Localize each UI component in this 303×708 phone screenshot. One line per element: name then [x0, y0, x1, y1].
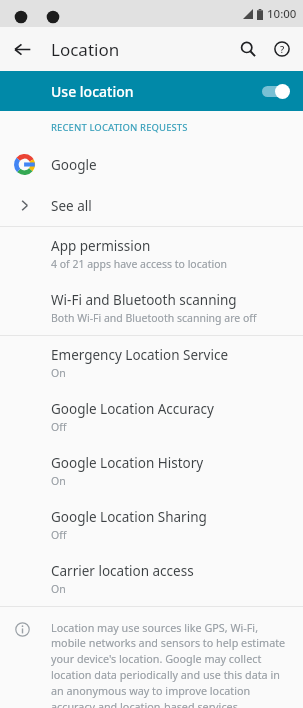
button[interactable]: App permission — [0, 227, 303, 281]
button[interactable]: See all — [0, 185, 303, 226]
staticText: 10:00 — [267, 6, 297, 22]
staticText: ? — [280, 43, 285, 56]
button[interactable]: Google Location Accuracy — [0, 390, 303, 444]
staticText: App permission — [51, 237, 151, 255]
staticText: Carrier location access — [51, 562, 194, 580]
staticText: Google Location History — [51, 454, 204, 472]
staticText: On — [51, 474, 66, 488]
button[interactable]: Emergency Location Service — [0, 336, 303, 390]
button[interactable]: Google — [0, 144, 303, 185]
staticText: Emergency Location Service — [51, 346, 229, 364]
button[interactable]: Carrier location access — [0, 552, 303, 606]
staticText: Location may use sources like GPS, Wi-Fi… — [51, 620, 290, 708]
staticText: Wi-Fi and Bluetooth scanning — [51, 291, 237, 309]
staticText: Both Wi-Fi and Bluetooth scanning are of… — [51, 311, 257, 325]
staticText: Off — [51, 420, 67, 434]
button[interactable]: Back — [6, 33, 38, 65]
staticText: RECENT LOCATION REQUESTS — [51, 121, 188, 134]
staticText: See all — [51, 197, 92, 215]
button[interactable]: Google Location Sharing — [0, 498, 303, 552]
staticText: Google — [51, 156, 97, 174]
staticText: On — [51, 366, 66, 380]
staticText: On — [51, 582, 66, 596]
button[interactable]: Help — [265, 32, 299, 66]
staticText: 4 of 21 apps have access to location — [51, 257, 227, 271]
staticText: Google Location Sharing — [51, 508, 207, 526]
staticText: Off — [51, 528, 67, 542]
button[interactable]: Search — [231, 32, 265, 66]
staticText: Location — [51, 38, 120, 61]
button[interactable]: Wi-Fi and Bluetooth scanning — [0, 281, 303, 335]
button[interactable]: Google Location History — [0, 444, 303, 498]
button[interactable]: Use location — [0, 71, 303, 111]
staticText: Use location — [51, 82, 134, 101]
staticText: Google Location Accuracy — [51, 400, 214, 418]
